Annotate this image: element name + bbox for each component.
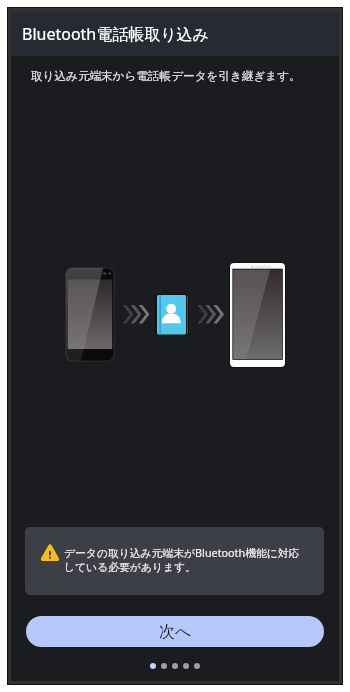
button[interactable]: Page 1 xyxy=(150,663,156,669)
button[interactable]: データの取り込み元端末がBluetooth機能に対応している必要があります。 xyxy=(25,527,324,595)
staticText: 取り込み元端末から電話帳データを引き継ぎます。 xyxy=(31,69,301,84)
button[interactable]: Page 3 xyxy=(172,663,178,669)
button[interactable]: Page 5 xyxy=(194,663,200,669)
staticText: 次へ xyxy=(159,622,192,642)
button[interactable]: 次へ xyxy=(26,616,324,647)
button[interactable]: Page 2 xyxy=(161,663,167,669)
button[interactable]: Page 4 xyxy=(183,663,189,669)
staticText: Bluetooth電話帳取り込み xyxy=(22,23,209,45)
staticText: データの取り込み元端末がBluetooth機能に対応している必要があります。 xyxy=(64,545,307,574)
